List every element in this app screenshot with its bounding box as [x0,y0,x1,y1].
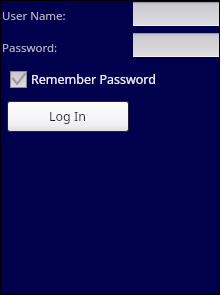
staticText: User Name: [2,8,66,24]
staticText: Password: [2,40,58,56]
button[interactable]: Password input [133,33,219,57]
button[interactable]: User name input [133,2,219,26]
staticText: Log In [49,108,87,125]
button[interactable]: Remember Password [10,69,156,89]
staticText: Remember Password [31,71,156,88]
button[interactable]: Log In [8,102,128,131]
